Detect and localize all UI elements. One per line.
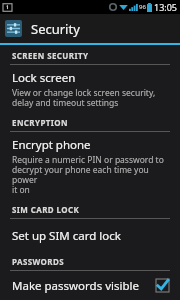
button[interactable]: Set up SIM card lock [0, 219, 180, 253]
staticText: Set up SIM card lock [12, 228, 121, 244]
staticText: Encrypt phone [12, 137, 91, 153]
button[interactable]: Make passwords visible [0, 271, 180, 300]
other: Settings [5, 20, 22, 37]
staticText: 96 [139, 3, 146, 11]
staticText: Security [31, 20, 80, 38]
button[interactable]: Make passwords visible toggle [154, 278, 170, 293]
button[interactable]: Settings [0, 14, 180, 43]
staticText: View or change lock screen security, del… [12, 87, 156, 109]
button[interactable]: Lock screen [0, 65, 180, 114]
staticText: PASSWORDS [12, 256, 65, 267]
staticText: SCREEN SECURITY [12, 50, 89, 61]
staticText: ENCRYPTION [12, 117, 68, 128]
staticText: Lock screen [12, 70, 76, 86]
button[interactable]: Encrypt phone [0, 132, 180, 201]
staticText: SIM CARD LOCK [12, 204, 80, 215]
staticText: Make passwords visible [12, 278, 139, 293]
staticText: Require a numeric PIN or password to dec… [12, 154, 170, 196]
staticText: 13:05 [154, 1, 178, 13]
